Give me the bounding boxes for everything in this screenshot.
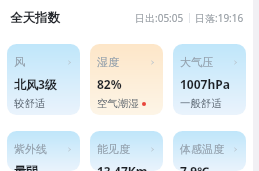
staticText: 82% (97, 76, 122, 92)
staticText: 1007hPa (180, 76, 230, 92)
staticText: 体感温度 (180, 142, 224, 156)
button[interactable]: 体感温度 (173, 131, 246, 171)
staticText: 北风3级 (14, 76, 57, 92)
button[interactable]: 湿度 (90, 44, 163, 115)
staticText: 大气压 (180, 55, 213, 69)
staticText: 风 (14, 55, 25, 69)
button[interactable]: 风 (7, 44, 80, 115)
button[interactable]: 能见度 (90, 131, 163, 171)
staticText: 较舒适 (14, 97, 46, 110)
button[interactable]: 大气压 (173, 44, 246, 115)
staticText: 日落:19:16 (195, 11, 244, 25)
staticText: 最弱 (14, 163, 38, 171)
staticText: 能见度 (97, 142, 130, 156)
staticText: 13.47Km (97, 163, 148, 171)
button[interactable]: 紫外线 (7, 131, 80, 171)
staticText: 7.9℃ (180, 163, 210, 171)
staticText: 空气潮湿 (97, 97, 139, 110)
staticText: 一般舒适 (180, 97, 222, 110)
staticText: 湿度 (97, 55, 119, 69)
staticText: 日出:05:05 (135, 11, 184, 25)
staticText: 全天指数 (10, 10, 60, 26)
staticText: 紫外线 (14, 142, 47, 156)
